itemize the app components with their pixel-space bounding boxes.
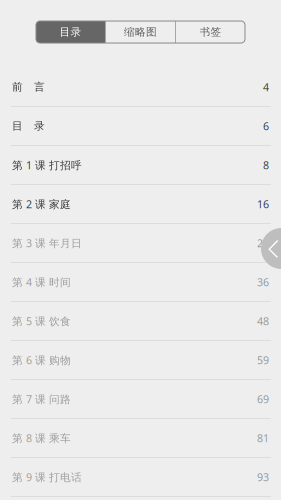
staticText: 16: [257, 197, 269, 211]
button[interactable]: 前 言: [0, 68, 281, 107]
button[interactable]: 第 8 课 乘车: [0, 419, 281, 458]
button[interactable]: 第 6 课 购物: [0, 341, 281, 380]
staticText: 第 9 课 打电话: [12, 470, 82, 484]
staticText: 目录: [59, 25, 81, 38]
staticText: 缩略图: [124, 25, 157, 38]
staticText: 第 2 课 家庭: [12, 197, 71, 211]
staticText: 59: [257, 353, 269, 367]
staticText: 目 录: [12, 119, 45, 132]
staticText: 36: [257, 275, 269, 289]
button[interactable]: 目 录: [0, 107, 281, 146]
staticText: 第 4 课 时间: [12, 275, 71, 289]
staticText: 第 8 课 乘车: [12, 431, 71, 445]
staticText: 6: [263, 119, 269, 133]
button[interactable]: 目录: [36, 21, 105, 43]
staticText: 8: [263, 158, 269, 172]
button[interactable]: 第 5 课 饮食: [0, 302, 281, 341]
staticText: 第 6 课 购物: [12, 353, 71, 367]
staticText: 4: [263, 80, 269, 94]
button[interactable]: 第 1 课 打招呼: [0, 146, 281, 185]
button[interactable]: 第 3 课 年月日: [0, 224, 281, 263]
staticText: 第 3 课 年月日: [12, 236, 82, 250]
staticText: 69: [257, 392, 269, 406]
button[interactable]: 书签: [176, 21, 245, 43]
staticText: 书签: [199, 25, 221, 38]
staticText: 第 7 课 问路: [12, 392, 71, 406]
staticText: 第 1 课 打招呼: [12, 158, 82, 172]
button[interactable]: 缩略图: [106, 21, 175, 43]
button[interactable]: 第 4 课 时间: [0, 263, 281, 302]
button[interactable]: 第 7 课 问路: [0, 380, 281, 419]
staticText: 前 言: [12, 80, 45, 93]
staticText: 81: [257, 431, 269, 445]
staticText: 26: [257, 236, 269, 250]
button[interactable]: 第 9 课 打电话: [0, 458, 281, 497]
staticText: 93: [257, 470, 269, 484]
staticText: 48: [257, 314, 269, 328]
button[interactable]: 第 2 课 家庭: [0, 185, 281, 224]
button[interactable]: Close contents drawer: [261, 228, 281, 269]
staticText: 第 5 课 饮食: [12, 314, 71, 328]
